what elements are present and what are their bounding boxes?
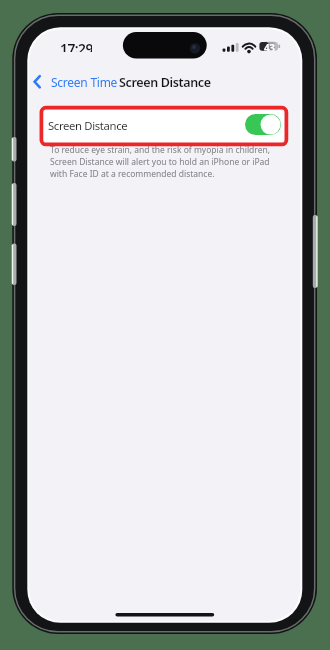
staticText: with Face ID at a recommended distance. — [50, 168, 215, 180]
staticText: 43 — [264, 41, 275, 51]
staticText: Screen Distance — [48, 118, 128, 133]
button[interactable]: Screen Time — [31, 73, 116, 90]
button[interactable] — [245, 114, 281, 135]
staticText: 17:29 — [60, 39, 92, 52]
button[interactable]: Screen Distance — [43, 110, 284, 143]
staticText: Screen Time — [51, 74, 118, 90]
staticText: Screen Distance — [119, 74, 211, 90]
staticText: To reduce eye strain, and the risk of my… — [50, 144, 271, 156]
staticText: Screen Distance will alert you to hold a… — [50, 156, 270, 168]
